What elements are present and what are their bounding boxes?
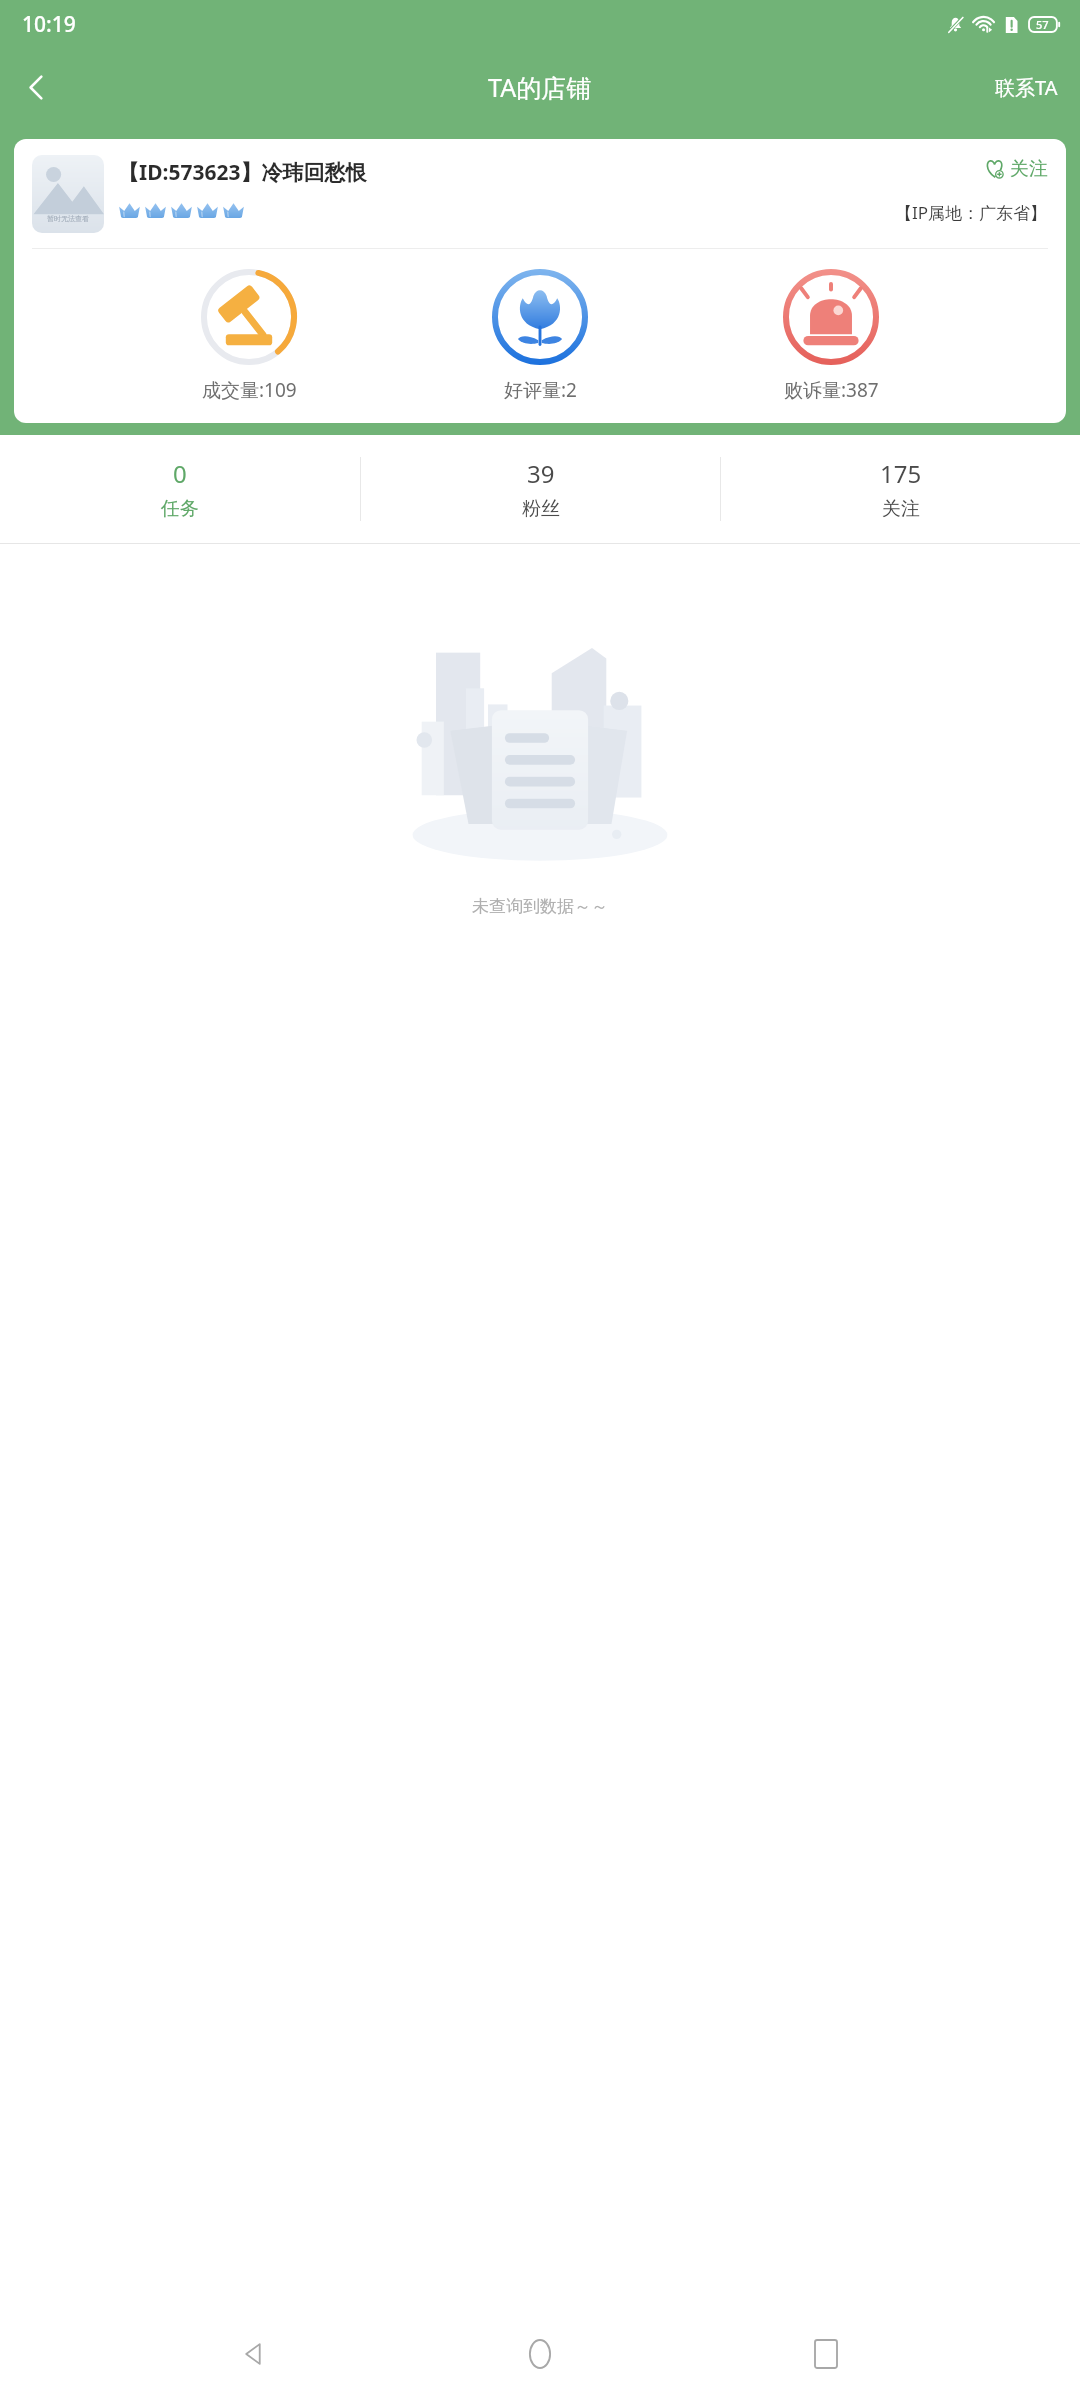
staticText: 0 (173, 457, 187, 490)
button[interactable]: 主屏幕 (508, 2322, 572, 2386)
staticText: 任务 (161, 497, 199, 521)
button[interactable]: 联系TA (987, 62, 1066, 113)
button[interactable]: 0 (0, 435, 360, 543)
button[interactable]: 返回 (8, 59, 64, 115)
staticText: 39 (527, 457, 555, 490)
staticText: 57 (1036, 17, 1049, 32)
staticText: 【ID:573623】冷玮回愁恨 (118, 158, 367, 187)
staticText: TA的店铺 (488, 70, 592, 104)
button[interactable]: 175 (721, 435, 1080, 543)
staticText: 关注 (882, 497, 920, 521)
staticText: 粉丝 (522, 497, 560, 521)
staticText: 未查询到数据～～ (472, 896, 608, 917)
button[interactable]: 成交量:109 (193, 269, 305, 403)
staticText: 好评量:2 (504, 377, 577, 403)
staticText: 10:19 (22, 10, 76, 39)
button[interactable]: 最近任务 (794, 2322, 858, 2386)
button[interactable]: 返回 (222, 2322, 286, 2386)
button[interactable]: 好评量:2 (484, 269, 596, 403)
staticText: 关注 (1010, 157, 1048, 181)
staticText: 败诉量:387 (784, 377, 879, 403)
staticText: 暂时无法查看 (47, 214, 89, 223)
button[interactable]: 关注 (984, 155, 1048, 183)
staticText: 成交量:109 (202, 377, 297, 403)
button[interactable]: 败诉量:387 (775, 269, 887, 403)
staticText: 联系TA (995, 74, 1058, 101)
staticText: 175 (880, 457, 922, 490)
staticText: 【IP属地：广东省】 (895, 201, 1048, 224)
button[interactable]: 39 (361, 435, 720, 543)
